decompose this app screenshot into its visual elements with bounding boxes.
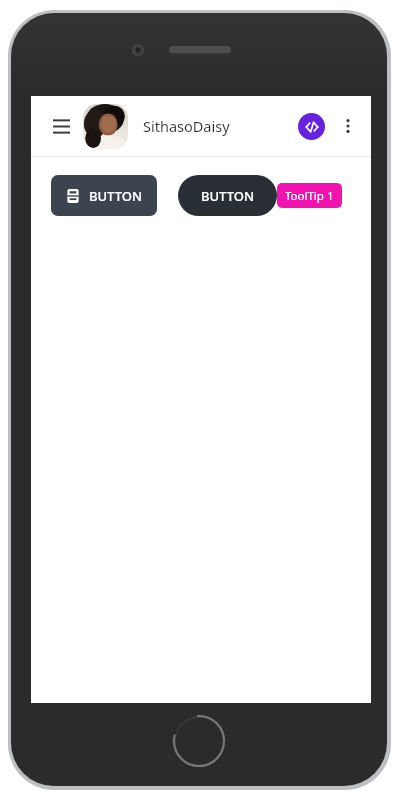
- button[interactable]: View source code: [298, 113, 325, 140]
- button[interactable]: ToolTip 1: [277, 183, 342, 208]
- staticText: BUTTON: [89, 187, 142, 205]
- button[interactable]: Profile photo: [83, 104, 128, 149]
- button[interactable]: BUTTON: [178, 175, 277, 216]
- button[interactable]: BUTTON: [51, 175, 157, 216]
- staticText: SithasoDaisy: [143, 116, 230, 136]
- button[interactable]: Open navigation menu: [48, 113, 74, 139]
- staticText: ToolTip 1: [285, 188, 334, 204]
- button[interactable]: More options: [336, 114, 360, 138]
- staticText: BUTTON: [201, 187, 254, 205]
